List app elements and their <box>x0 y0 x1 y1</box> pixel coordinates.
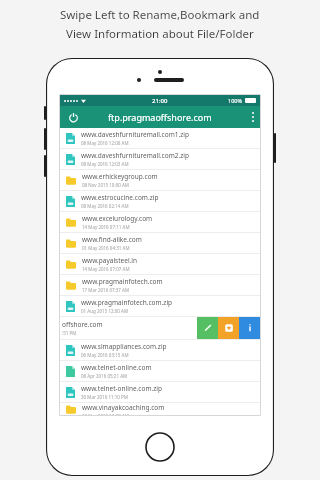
button[interactable]: www.daveshfurnituremall.com1.zip <box>60 128 260 149</box>
staticText: www.estrocucine.com.zip <box>81 193 159 202</box>
button[interactable]: www.daveshfurnituremall.com2.zip <box>60 149 260 170</box>
staticText: 30 Mar 2016 11:10 PM <box>81 394 128 400</box>
staticText: www.pragmainfotech.com.zip <box>81 298 173 307</box>
button[interactable]: www.vinayakcoaching.com <box>60 403 260 415</box>
button[interactable]: www.erhickeygroup.com <box>60 170 260 191</box>
staticText: offshore.com <box>62 320 103 329</box>
staticText: www.payalsteel.in <box>82 256 137 265</box>
button[interactable]: www.telnet-online.com.zip <box>60 382 260 403</box>
button[interactable]: Disconnect <box>65 109 81 125</box>
staticText: www.pragmainfotech.com <box>82 277 163 286</box>
staticText: ftp.pragmaoffshore.com <box>108 111 212 123</box>
staticText: View Information about File/Folder <box>66 26 254 42</box>
staticText: www.telnet-online.com.zip <box>81 384 162 393</box>
staticText: 06 May 2016 03:15 AM <box>81 352 129 358</box>
staticText: 01 May 2016 04:31 AM <box>82 245 130 251</box>
button[interactable]: www.excelurology.com <box>60 212 260 233</box>
staticText: 08 Nov 2015 10:00 AM <box>82 182 129 188</box>
staticText: 14 May 2016 07:11 AM <box>82 224 130 230</box>
button[interactable]: www.slmappliances.com.zip <box>60 340 260 361</box>
button[interactable]: More options <box>252 112 254 122</box>
staticText: 14 May 2016 07:07 AM <box>82 266 130 272</box>
staticText: www.daveshfurnituremall.com1.zip <box>81 130 189 139</box>
staticText: 08 May 2016 12:06 AM <box>81 140 129 146</box>
button[interactable]: Rename <box>197 317 218 339</box>
staticText: 08 Apr 2016 05:21 AM <box>81 373 128 379</box>
staticText: 01 Aug 2015 12:00 AM <box>81 308 129 314</box>
staticText: www.daveshfurnituremall.com2.zip <box>81 151 189 160</box>
staticText: 08 May 2016 02:14 AM <box>81 203 129 209</box>
button[interactable]: www.pragmainfotech.com.zip <box>60 296 260 317</box>
staticText: Swipe Left to Rename,Bookmark and <box>60 7 260 23</box>
staticText: 100% <box>228 97 243 104</box>
staticText: 08 May 2016 12:03 AM <box>81 161 129 167</box>
staticText: www.find-alike.com <box>82 235 142 244</box>
staticText: 13 Nov 2015 12:00 AM <box>82 413 129 415</box>
staticText: 17 Mar 2016 07:37 AM <box>82 287 130 293</box>
staticText: www.vinayakcoaching.com <box>82 403 165 412</box>
button[interactable]: www.estrocucine.com.zip <box>60 191 260 212</box>
staticText: www.erhickeygroup.com <box>82 172 158 181</box>
staticText: www.excelurology.com <box>82 214 153 223</box>
button[interactable]: Bookmark <box>218 317 239 339</box>
button[interactable]: www.find-alike.com <box>60 233 260 254</box>
button[interactable]: www.pragmainfotech.com <box>60 275 260 296</box>
staticText: www.slmappliances.com.zip <box>81 342 167 351</box>
staticText: 21:00 <box>152 97 168 105</box>
button[interactable]: www.telnet-online.com <box>60 361 260 382</box>
staticText: www.telnet-online.com <box>81 363 152 372</box>
button[interactable]: Information <box>239 317 260 339</box>
staticText: :51 PM <box>62 330 77 336</box>
button[interactable]: www.payalsteel.in <box>60 254 260 275</box>
